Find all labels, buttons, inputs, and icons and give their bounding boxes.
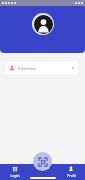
staticText: Informasi xyxy=(18,66,37,71)
button[interactable]: Login xyxy=(0,164,29,180)
staticText: Login xyxy=(10,173,20,178)
button[interactable]: Profile photo xyxy=(32,13,54,35)
button[interactable]: Profil xyxy=(57,164,85,180)
button[interactable]: Scan QR code xyxy=(33,152,52,171)
staticText: Profil xyxy=(67,173,76,178)
button[interactable]: Informasi xyxy=(6,62,78,74)
